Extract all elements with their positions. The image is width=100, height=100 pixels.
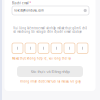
button[interactable]: Verification digit <box>64 43 75 53</box>
staticText: Mã xác thực không hợp lệ, vui lòng thử l… <box>12 57 71 60</box>
staticText: Vui lòng kiểm tra email và nhập mã xác t… <box>13 26 87 33</box>
button[interactable]: Verification digit <box>25 43 36 53</box>
staticText: Không nhận được mã? Gửi lại mã sau 60 gi… <box>19 80 80 83</box>
button[interactable]: Không nhận được mã? Gửi lại mã sau 60 gi… <box>16 80 84 83</box>
button[interactable]: Verification digit <box>12 43 23 53</box>
button[interactable]: Xác thực và Đăng nhập <box>17 66 83 77</box>
staticText: * <box>30 1 31 5</box>
staticText: Địa chỉ email <box>12 1 29 5</box>
button[interactable]: Verification digit <box>77 43 88 53</box>
staticText: lovest@honduku.com <box>14 9 43 12</box>
button[interactable]: Verification digit <box>51 43 62 53</box>
staticText: Xác thực và Đăng nhập <box>30 69 69 74</box>
button[interactable]: Verification digit <box>38 43 49 53</box>
